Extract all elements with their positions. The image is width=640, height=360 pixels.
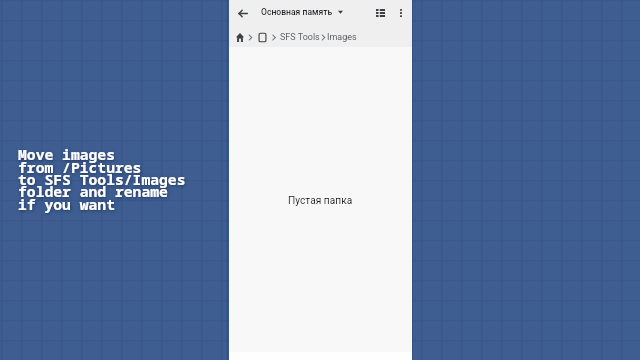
button[interactable]: Back	[234, 5, 251, 22]
staticText: to SFS Tools/Images	[18, 169, 186, 189]
button[interactable]: Home	[235, 30, 244, 45]
staticText: Основная память	[261, 7, 333, 17]
button[interactable]: Основная память	[261, 3, 343, 20]
button[interactable]: SFS Tools	[280, 32, 320, 43]
button[interactable]: Images	[327, 32, 357, 43]
button[interactable]: Switch to list view	[371, 4, 389, 21]
staticText: from /Pictures	[18, 157, 142, 177]
staticText: folder and rename	[18, 181, 168, 201]
staticText: Пустая папка	[288, 195, 353, 207]
staticText: Move images	[18, 144, 115, 164]
button[interactable]: More options	[392, 4, 409, 21]
button[interactable]: Internal storage	[257, 30, 268, 45]
staticText: if you want	[18, 194, 115, 214]
